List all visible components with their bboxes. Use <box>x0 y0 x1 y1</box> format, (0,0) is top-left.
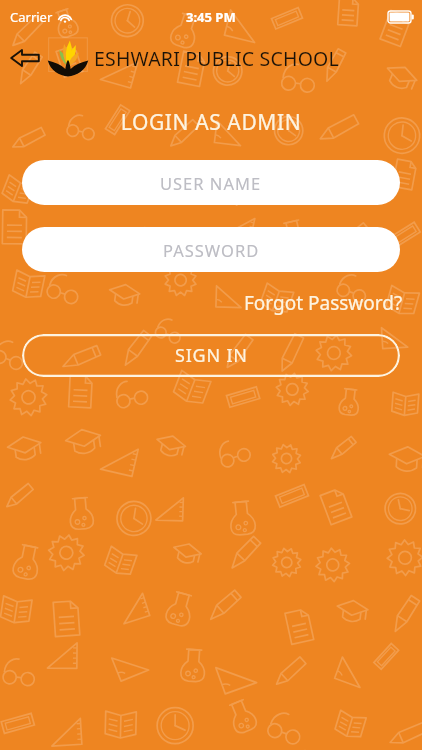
staticText: ESHWARI PUBLIC SCHOOL <box>94 45 339 72</box>
staticText: LOGIN AS ADMIN <box>0 108 422 137</box>
staticText: USER NAME <box>160 172 262 194</box>
button[interactable]: SIGN IN <box>22 334 400 377</box>
staticText: Forgot Password? <box>244 290 403 316</box>
staticText: PASSWORD <box>163 239 260 261</box>
staticText: 3:45 PM <box>186 8 236 26</box>
staticText: SIGN IN <box>175 343 248 368</box>
button[interactable]: Back <box>6 43 44 73</box>
button[interactable]: PASSWORD <box>22 227 400 272</box>
staticText: Carrier <box>10 8 53 26</box>
button[interactable]: USER NAME <box>22 160 400 205</box>
button[interactable]: Forgot Password? <box>242 288 405 318</box>
